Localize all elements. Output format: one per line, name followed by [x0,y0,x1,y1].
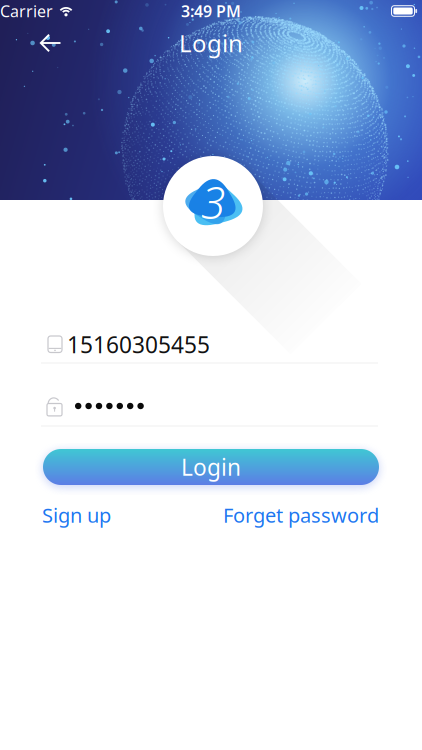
staticText: 3 [201,173,225,231]
button[interactable]: Phone number [0,333,422,355]
button[interactable]: Sign up [42,502,111,528]
staticText: Sign up [42,502,111,528]
staticText: Forget password [223,502,379,528]
staticText: Login [179,27,243,59]
staticText: 15160305455 [67,329,210,359]
button[interactable]: Back [39,33,61,52]
button[interactable]: Login [43,449,379,485]
staticText: 3:49 PM [181,0,241,22]
button[interactable]: Forget password [223,502,379,528]
button[interactable]: Password [0,393,422,419]
staticText: Login [181,452,241,482]
staticText: Carrier [0,0,53,22]
